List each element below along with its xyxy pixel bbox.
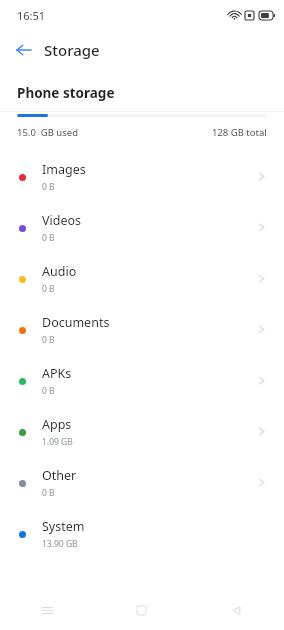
staticText: 0 B: [42, 487, 55, 499]
staticText: 0 B: [42, 232, 55, 244]
staticText: APKs: [42, 365, 72, 382]
button[interactable]: System: [0, 508, 284, 559]
staticText: 1.09 GB: [42, 436, 73, 448]
staticText: Audio: [42, 263, 77, 280]
button[interactable]: Other: [0, 457, 284, 508]
button[interactable]: Audio: [0, 253, 284, 304]
staticText: 0 B: [42, 181, 55, 193]
staticText: 16:51: [17, 8, 46, 23]
staticText: 128 GB total: [212, 126, 267, 139]
staticText: Other: [42, 467, 77, 484]
staticText: System: [42, 518, 85, 535]
staticText: Apps: [42, 416, 72, 433]
button[interactable]: Documents: [0, 304, 284, 355]
staticText: Documents: [42, 314, 110, 331]
button[interactable]: Apps: [0, 406, 284, 457]
staticText: 0 B: [42, 283, 55, 295]
staticText: 13.90 GB: [42, 538, 78, 550]
button[interactable]: Videos: [0, 202, 284, 253]
staticText: Videos: [42, 212, 82, 229]
button[interactable]: APKs: [0, 355, 284, 406]
button[interactable]: Back: [8, 34, 40, 66]
staticText: Storage: [44, 40, 100, 60]
staticText: 15.0 GB used: [17, 126, 78, 139]
button[interactable]: Images: [0, 151, 284, 202]
staticText: Images: [42, 161, 86, 178]
staticText: 0 B: [42, 334, 55, 346]
staticText: Phone storage: [17, 84, 115, 102]
staticText: 0 B: [42, 385, 55, 397]
button[interactable]: Recent apps: [0, 590, 94, 630]
